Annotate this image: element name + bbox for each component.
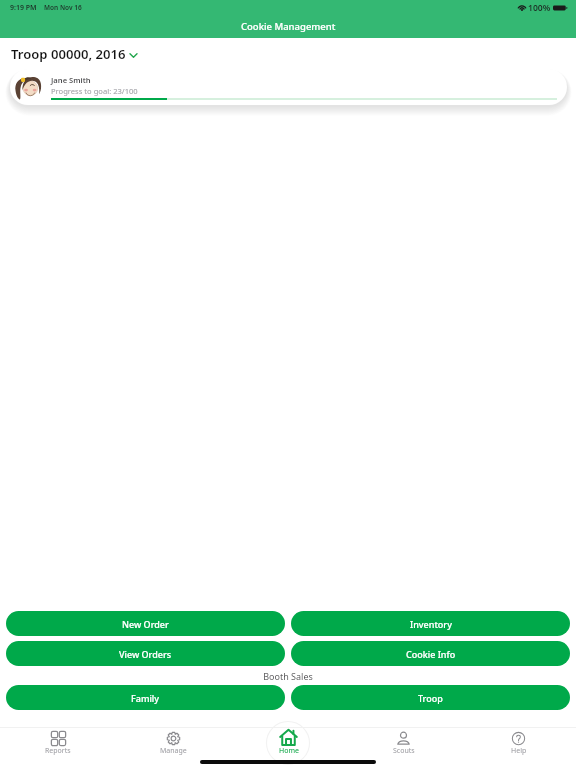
button[interactable]: Home bbox=[231, 728, 346, 768]
staticText: Jane Smith bbox=[51, 75, 91, 85]
staticText: Home bbox=[279, 746, 299, 756]
button[interactable]: Help bbox=[461, 728, 576, 768]
staticText: Family bbox=[131, 692, 160, 704]
staticText: Reports bbox=[45, 746, 71, 756]
staticText: Scouts bbox=[393, 746, 415, 756]
button[interactable]: Scouts bbox=[346, 728, 461, 768]
button[interactable]: Troop 00000, 2016 bbox=[11, 45, 138, 63]
button[interactable]: Manage bbox=[116, 728, 231, 768]
button[interactable]: View Orders bbox=[6, 641, 285, 666]
button[interactable]: Troop bbox=[291, 685, 570, 710]
staticText: Manage bbox=[160, 746, 187, 756]
staticText: Troop bbox=[418, 692, 443, 704]
staticText: Help bbox=[511, 746, 527, 756]
button[interactable]: Cookie Info bbox=[291, 641, 570, 666]
staticText: Troop 00000, 2016 bbox=[11, 45, 126, 63]
staticText: View Orders bbox=[119, 648, 172, 660]
staticText: 100% bbox=[528, 2, 551, 14]
button[interactable]: Reports bbox=[0, 728, 116, 768]
staticText: 9:19 PM bbox=[10, 3, 37, 13]
button[interactable]: Inventory bbox=[291, 611, 570, 636]
staticText: New Order bbox=[122, 618, 169, 630]
button[interactable]: New Order bbox=[6, 611, 285, 636]
button[interactable]: Jane Smith bbox=[10, 69, 567, 105]
staticText: Cookie Management bbox=[241, 20, 336, 33]
staticText: Mon Nov 16 bbox=[44, 3, 82, 12]
button[interactable]: Family bbox=[6, 685, 285, 710]
staticText: Inventory bbox=[410, 618, 452, 630]
staticText: Cookie Info bbox=[406, 648, 456, 660]
staticText: Booth Sales bbox=[6, 670, 570, 682]
staticText: Progress to goal: 23/100 bbox=[51, 86, 138, 96]
